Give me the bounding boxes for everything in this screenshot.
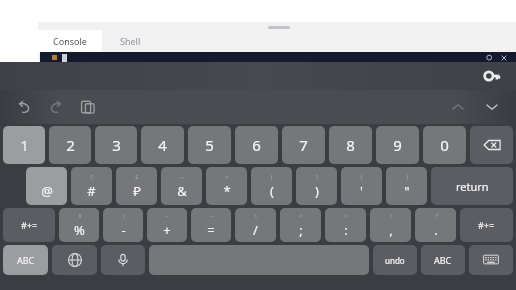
staticText: ; [299, 221, 303, 239]
staticText: ? [435, 212, 438, 220]
staticText: < [299, 212, 303, 220]
staticText: ] [316, 173, 318, 181]
button[interactable]: § [59, 208, 99, 242]
staticText: 7 [299, 135, 308, 155]
button[interactable]: Undo [12, 95, 36, 119]
staticText: + [163, 221, 171, 239]
staticText: Shell [120, 35, 141, 47]
button[interactable]: Next field [480, 95, 504, 119]
button[interactable]: 1 [3, 126, 45, 164]
button[interactable]: 9 [376, 126, 419, 164]
button[interactable]: 4 [141, 126, 184, 164]
staticText: 4 [158, 135, 167, 155]
button[interactable]: Redo [44, 95, 68, 119]
staticText: #+= [478, 219, 495, 231]
staticText: % [74, 221, 85, 239]
staticText: > [344, 212, 348, 220]
staticText: : [344, 221, 348, 239]
staticText: } [406, 173, 409, 181]
button[interactable]: Change language [52, 245, 97, 275]
staticText: & [177, 182, 187, 200]
staticText: 9 [393, 135, 402, 155]
button[interactable]: Hide keyboard [469, 245, 513, 275]
button[interactable]: | [103, 208, 143, 242]
button[interactable]: Passwords [480, 64, 504, 88]
staticText: 5 [205, 135, 214, 155]
button[interactable]: return [431, 167, 513, 205]
button[interactable]: ~ [147, 208, 187, 242]
staticText: § [78, 212, 82, 220]
staticText: ) [315, 182, 319, 200]
staticText: @ [41, 182, 53, 200]
button[interactable]: ABC [3, 245, 48, 275]
staticText: ABC [17, 254, 35, 266]
button[interactable]: 2 [49, 126, 91, 164]
staticText: ~ [165, 212, 169, 220]
button[interactable]: #+= [3, 208, 55, 242]
staticText: , [389, 221, 393, 239]
staticText: 3 [112, 135, 121, 155]
staticText: ₽ [133, 182, 141, 200]
staticText: #+= [21, 219, 38, 231]
button[interactable]: ! [370, 208, 411, 242]
staticText: | [122, 212, 126, 220]
button[interactable]: ¬ [161, 167, 202, 205]
staticText: Console [53, 35, 87, 47]
button[interactable]: 6 [235, 126, 278, 164]
button[interactable]: < [280, 208, 321, 242]
staticText: " [404, 182, 410, 200]
button[interactable]: { [341, 167, 382, 205]
button[interactable]: > [325, 208, 366, 242]
button[interactable]: ^ [206, 167, 247, 205]
staticText: / [253, 221, 258, 239]
staticText: ^ [225, 173, 229, 181]
staticText: return [456, 179, 489, 194]
staticText: \ [254, 212, 257, 220]
staticText: 1 [20, 135, 29, 155]
staticText: { [360, 173, 363, 181]
staticText: ' [360, 182, 363, 200]
staticText: - [121, 221, 126, 239]
button[interactable]: #+= [460, 208, 513, 242]
button[interactable]: £ [116, 167, 157, 205]
staticText: = [207, 221, 215, 239]
staticText: * [223, 182, 231, 200]
button[interactable]: \ [235, 208, 276, 242]
staticText: ( [270, 182, 274, 200]
staticText: ABC [434, 254, 452, 266]
staticText: undo [385, 255, 405, 266]
staticText: 2 [66, 135, 75, 155]
staticText: ! [390, 212, 392, 220]
staticText: £ [135, 173, 139, 181]
button[interactable]: } [386, 167, 427, 205]
staticText: # [87, 182, 96, 200]
button[interactable]: ? [415, 208, 456, 242]
staticText: ··· [209, 212, 214, 220]
button[interactable]: ] [296, 167, 337, 205]
button[interactable]: 8 [329, 126, 372, 164]
button[interactable]: ABC [421, 245, 465, 275]
button[interactable]: Backspace [470, 126, 513, 164]
button[interactable]: ¢ [71, 167, 112, 205]
button[interactable]: Paste [76, 95, 100, 119]
staticText: [ [271, 173, 273, 181]
button[interactable]: 0 [423, 126, 466, 164]
staticText: 8 [346, 135, 355, 155]
staticText: . [434, 221, 438, 239]
button[interactable]: undo [373, 245, 417, 275]
button[interactable] [149, 245, 369, 275]
button[interactable]: 7 [282, 126, 325, 164]
button[interactable]: Voice input [101, 245, 145, 275]
button[interactable]: Console [38, 30, 102, 52]
button[interactable]: $ [26, 167, 67, 205]
button[interactable]: [ [251, 167, 292, 205]
button[interactable]: Shell [102, 30, 158, 52]
button[interactable]: ··· [191, 208, 231, 242]
staticText: ¢ [90, 173, 94, 181]
button[interactable]: 5 [188, 126, 231, 164]
staticText: 6 [252, 135, 261, 155]
staticText: ¬ [180, 173, 184, 181]
button[interactable]: Previous field [446, 95, 470, 119]
button[interactable]: 3 [95, 126, 137, 164]
